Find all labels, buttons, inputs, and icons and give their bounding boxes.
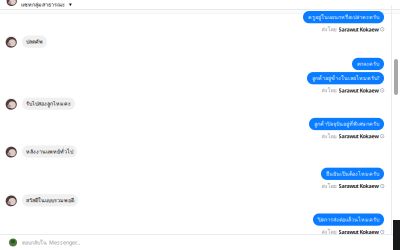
staticText: ส่งโดย [321,182,336,190]
staticText: ส่งโดย [321,86,336,95]
staticText: สวัสดีในแบบรวมพอดี [26,196,74,204]
staticText: Sarawut Kokaew [338,182,378,190]
staticText: ตอบกลับใน Messenger… [22,238,80,247]
button[interactable]: ลูกค้าปัจจุบันอยู่ที่พิเศษกครับ [309,118,384,130]
staticText: Sarawut Kokaew [338,26,378,33]
button[interactable]: หลังงานแพทย์ทั่วไป [22,145,77,158]
button[interactable]: ปิดการส่งต่อแล้วนไหมครับ [313,213,384,226]
button[interactable]: ตกลงครับ [352,58,384,70]
button[interactable]: ปลดคัพ [22,35,47,48]
staticText: Sarawut Kokaew [338,228,378,235]
staticText: Sarawut Kokaew [338,87,378,94]
staticText: ส่งโดย [321,228,336,236]
button[interactable]: สวัสดีในแบบรวมพอดี [22,194,78,206]
button[interactable]: รับไปสองลูกไหมคะ [22,98,75,110]
button[interactable]: ตอบกลับใน Messenger… [0,235,393,250]
staticText: ยืนยันเป็นต้องไหมครับ [326,170,379,178]
button[interactable]: ลูกค้าอยู่ข้างในเลยไหมครับ? [307,72,384,84]
staticText: Sarawut Kokaew [338,133,378,140]
staticText: รับไปสองลูกไหมคะ [26,100,71,108]
staticText: ครูอยู่ในแผนกหรือเปล่าคะครับ [308,13,379,21]
button[interactable]: แชทกลุ่มสาธารณะ [0,0,400,9]
staticText: ส่งโดย [321,25,336,34]
staticText: ▾ [69,1,72,8]
staticText: ตกลงครับ [357,60,379,68]
button[interactable]: ยืนยันเป็นต้องไหมครับ [321,168,384,180]
staticText: แชทกลุ่มสาธารณะ [21,0,65,9]
staticText: ส่งโดย [321,132,336,140]
button[interactable]: ครูอยู่ในแผนกหรือเปล่าคะครับ [303,11,384,23]
staticText: ลูกค้าปัจจุบันอยู่ที่พิเศษกครับ [314,120,379,128]
staticText: ลูกค้าอยู่ข้างในเลยไหมครับ? [312,74,379,82]
staticText: ปลดคัพ [26,37,43,46]
staticText: ปิดการส่งต่อแล้วนไหมครับ [318,215,379,224]
staticText: หลังงานแพทย์ทั่วไป [26,147,73,156]
